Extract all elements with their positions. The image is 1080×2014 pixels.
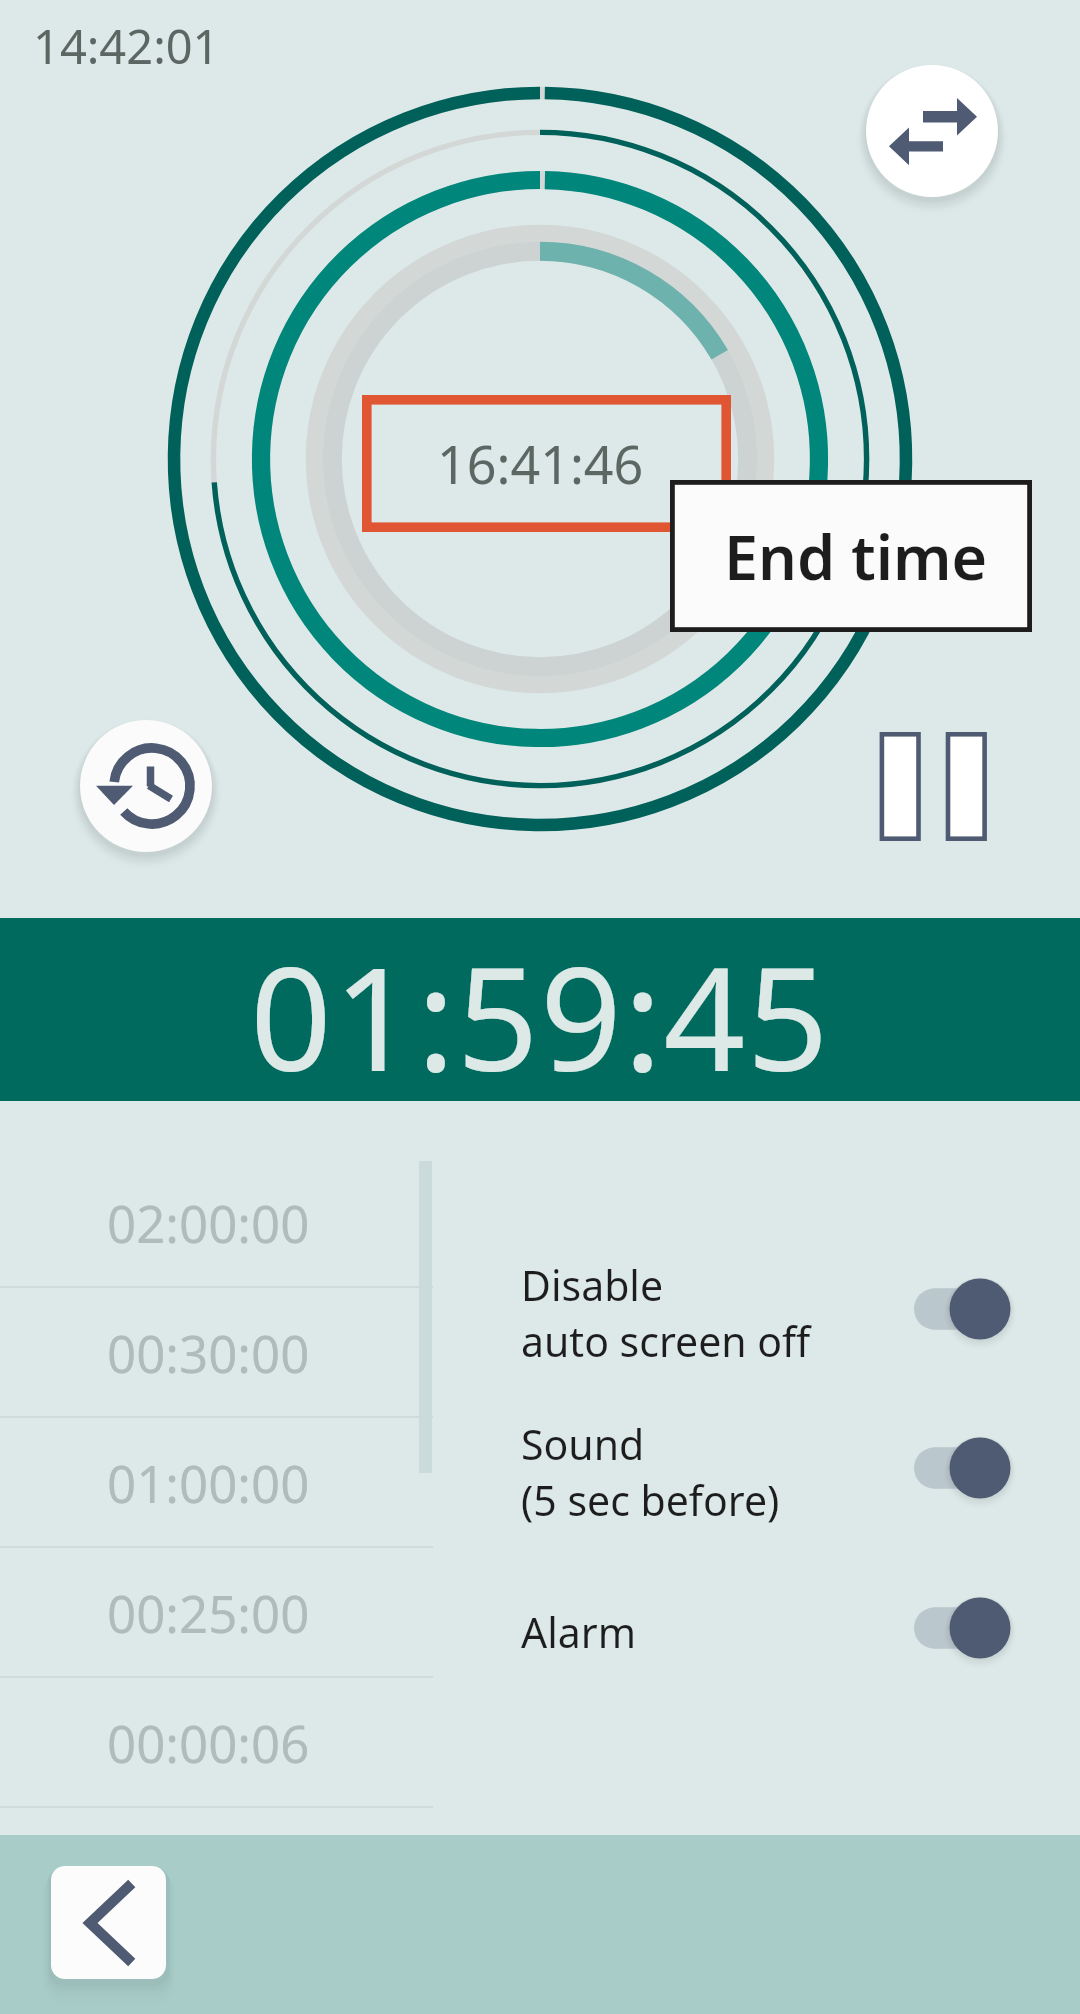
button[interactable]: Alarm bbox=[520, 1568, 1020, 1688]
staticText: 14:42:01 bbox=[33, 14, 220, 78]
button[interactable]: 01:00:00 bbox=[0, 1418, 433, 1546]
button[interactable]: Swap direction bbox=[866, 65, 998, 197]
staticText: 02:00:00 bbox=[107, 1188, 310, 1257]
staticText: 00:30:00 bbox=[107, 1318, 310, 1387]
staticText: 00:00:06 bbox=[107, 1708, 310, 1777]
button[interactable]: 00:30:00 bbox=[0, 1288, 433, 1416]
button[interactable]: History bbox=[80, 720, 212, 852]
staticText: 01:59:45 bbox=[250, 918, 831, 1101]
button[interactable]: 00:25:00 bbox=[0, 1548, 433, 1676]
staticText: Disable auto screen off bbox=[521, 1257, 811, 1369]
staticText: Alarm bbox=[521, 1604, 637, 1660]
button[interactable]: 00:00:06 bbox=[0, 1678, 433, 1806]
staticText: Sound (5 sec before) bbox=[521, 1416, 780, 1528]
button[interactable]: Disable auto screen off bbox=[520, 1249, 1020, 1369]
button[interactable]: 02:00:00 bbox=[0, 1158, 433, 1286]
staticText: End time bbox=[724, 515, 988, 598]
button[interactable]: Back bbox=[51, 1866, 166, 1979]
button[interactable]: Pause bbox=[875, 728, 991, 845]
staticText: 00:25:00 bbox=[107, 1578, 310, 1647]
button[interactable]: Sound (5 sec before) bbox=[520, 1408, 1020, 1528]
staticText: 16:41:46 bbox=[437, 428, 644, 499]
staticText: 01:00:00 bbox=[107, 1448, 310, 1517]
